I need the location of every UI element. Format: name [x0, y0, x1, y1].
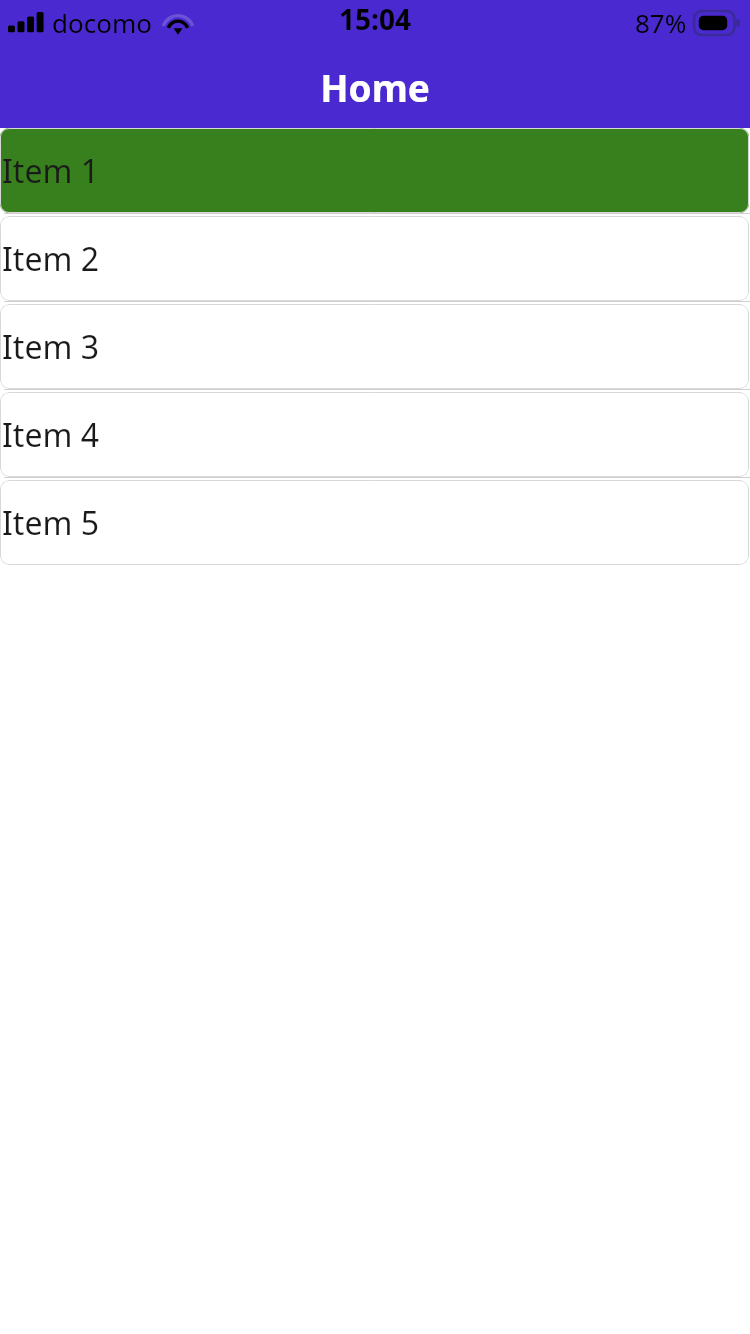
staticText: 15:04 [0, 0, 750, 38]
staticText: docomo [52, 5, 152, 40]
staticText: Item 2 [2, 237, 99, 281]
staticText: Home [0, 62, 750, 112]
button[interactable]: Item 2 [0, 216, 749, 301]
staticText: 87% [635, 5, 687, 40]
staticText: Item 5 [2, 501, 99, 545]
staticText: Item 1 [2, 149, 99, 193]
button[interactable]: Item 3 [0, 304, 749, 389]
button[interactable]: Item 4 [0, 392, 749, 477]
staticText: Item 3 [2, 325, 99, 369]
staticText: Item 4 [2, 413, 99, 457]
other: Battery 87 percent [694, 11, 740, 35]
other: Wi-Fi [161, 10, 195, 36]
button[interactable]: Item 5 [0, 480, 749, 565]
button[interactable]: Item 1 [0, 128, 749, 213]
other: Cellular signal [8, 10, 44, 36]
